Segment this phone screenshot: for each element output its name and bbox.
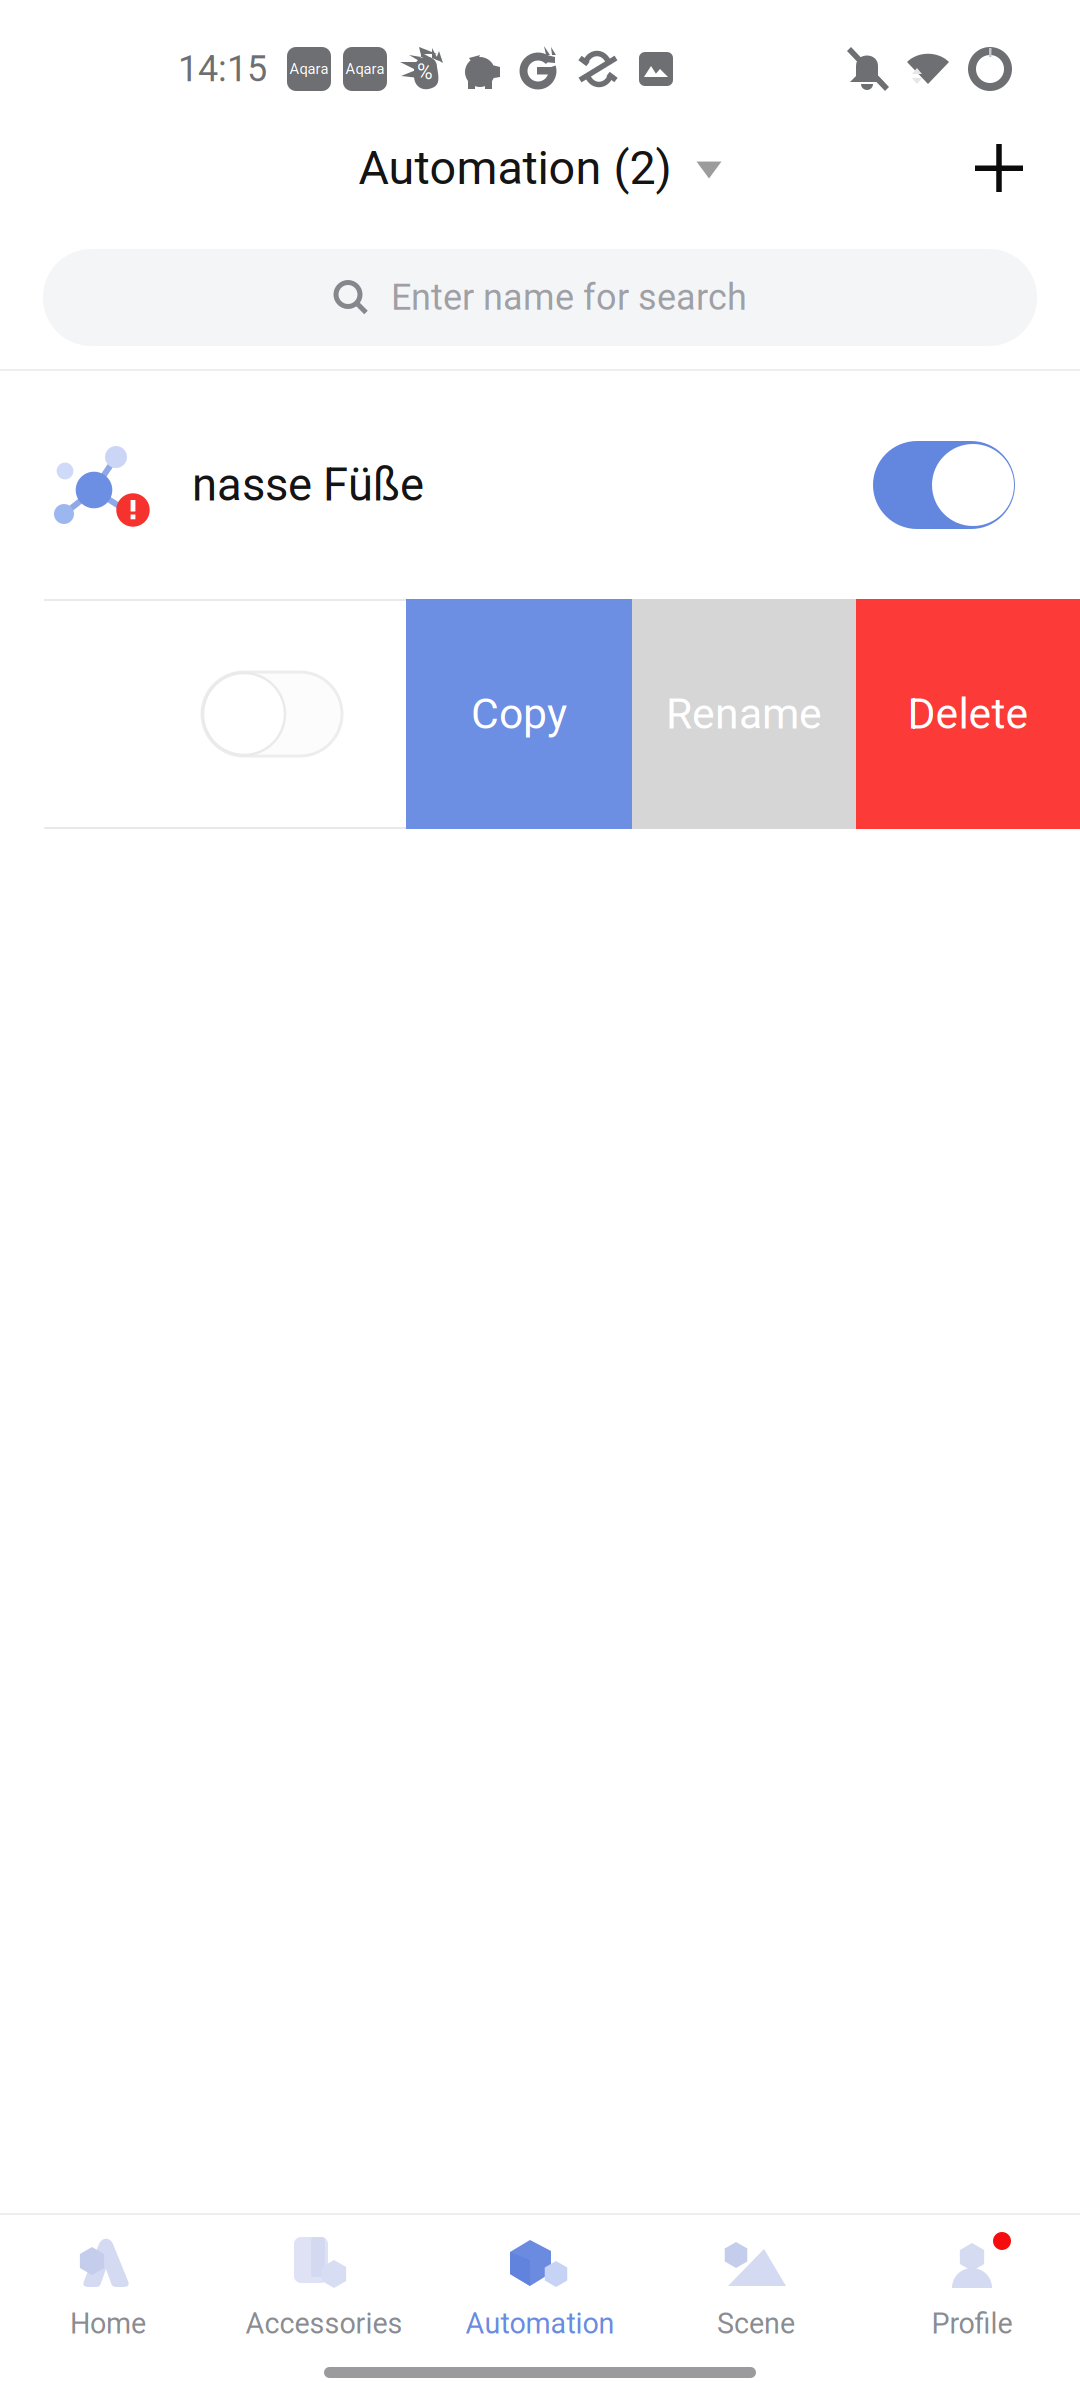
button[interactable]: Copy (406, 599, 632, 829)
staticText: 14:15 (178, 48, 267, 90)
staticText: nasse Füße (192, 458, 424, 511)
button[interactable]: Home (0, 2215, 216, 2367)
staticText: Aqara (289, 60, 328, 78)
button[interactable]: Enter name for search (43, 249, 1037, 346)
staticText: Rename (666, 689, 822, 739)
button[interactable]: Automation (432, 2215, 648, 2367)
button[interactable]: Profile (864, 2215, 1080, 2367)
staticText: Automation (2) (358, 141, 671, 195)
button[interactable]: Accessories (216, 2215, 432, 2367)
staticText: Aqara (345, 60, 384, 78)
staticText: Enter name for search (391, 276, 747, 319)
staticText: Copy (471, 689, 567, 739)
button[interactable]: Automation (2) (342, 125, 737, 211)
staticText: Accessories (245, 2307, 402, 2341)
staticText: Home (70, 2307, 146, 2341)
button[interactable]: Rename (632, 599, 856, 829)
staticText: Automation (465, 2307, 614, 2341)
staticText: Scene (717, 2307, 795, 2341)
staticText: Delete (907, 689, 1028, 739)
button[interactable]: Delete (856, 599, 1080, 829)
button[interactable]: Add automation (918, 112, 1080, 224)
button[interactable]: Scene (648, 2215, 864, 2367)
staticText: % (417, 59, 433, 84)
staticText: Profile (931, 2307, 1012, 2341)
button[interactable]: nasse Füße (0, 371, 1080, 599)
